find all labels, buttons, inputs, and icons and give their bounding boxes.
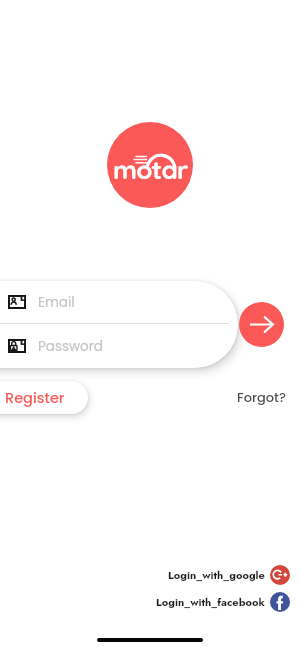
- staticText: Forgot?: [237, 388, 286, 406]
- staticText: Email: [38, 293, 75, 312]
- button[interactable]: Sign in: [239, 302, 284, 347]
- staticText: Register: [5, 388, 65, 408]
- button[interactable]: Forgot?: [235, 386, 288, 408]
- staticText: motar: [113, 153, 188, 186]
- button[interactable]: motar logo: [107, 122, 193, 208]
- staticText: Login_with_google: [168, 567, 265, 583]
- button[interactable]: Login_with_facebook: [156, 592, 290, 612]
- button[interactable]: Email: [0, 281, 238, 323]
- staticText: Password: [38, 337, 103, 356]
- button[interactable]: Password: [0, 324, 238, 368]
- button[interactable]: Login_with_google: [168, 565, 290, 585]
- button[interactable]: Register: [0, 381, 88, 414]
- staticText: Login_with_facebook: [156, 594, 265, 610]
